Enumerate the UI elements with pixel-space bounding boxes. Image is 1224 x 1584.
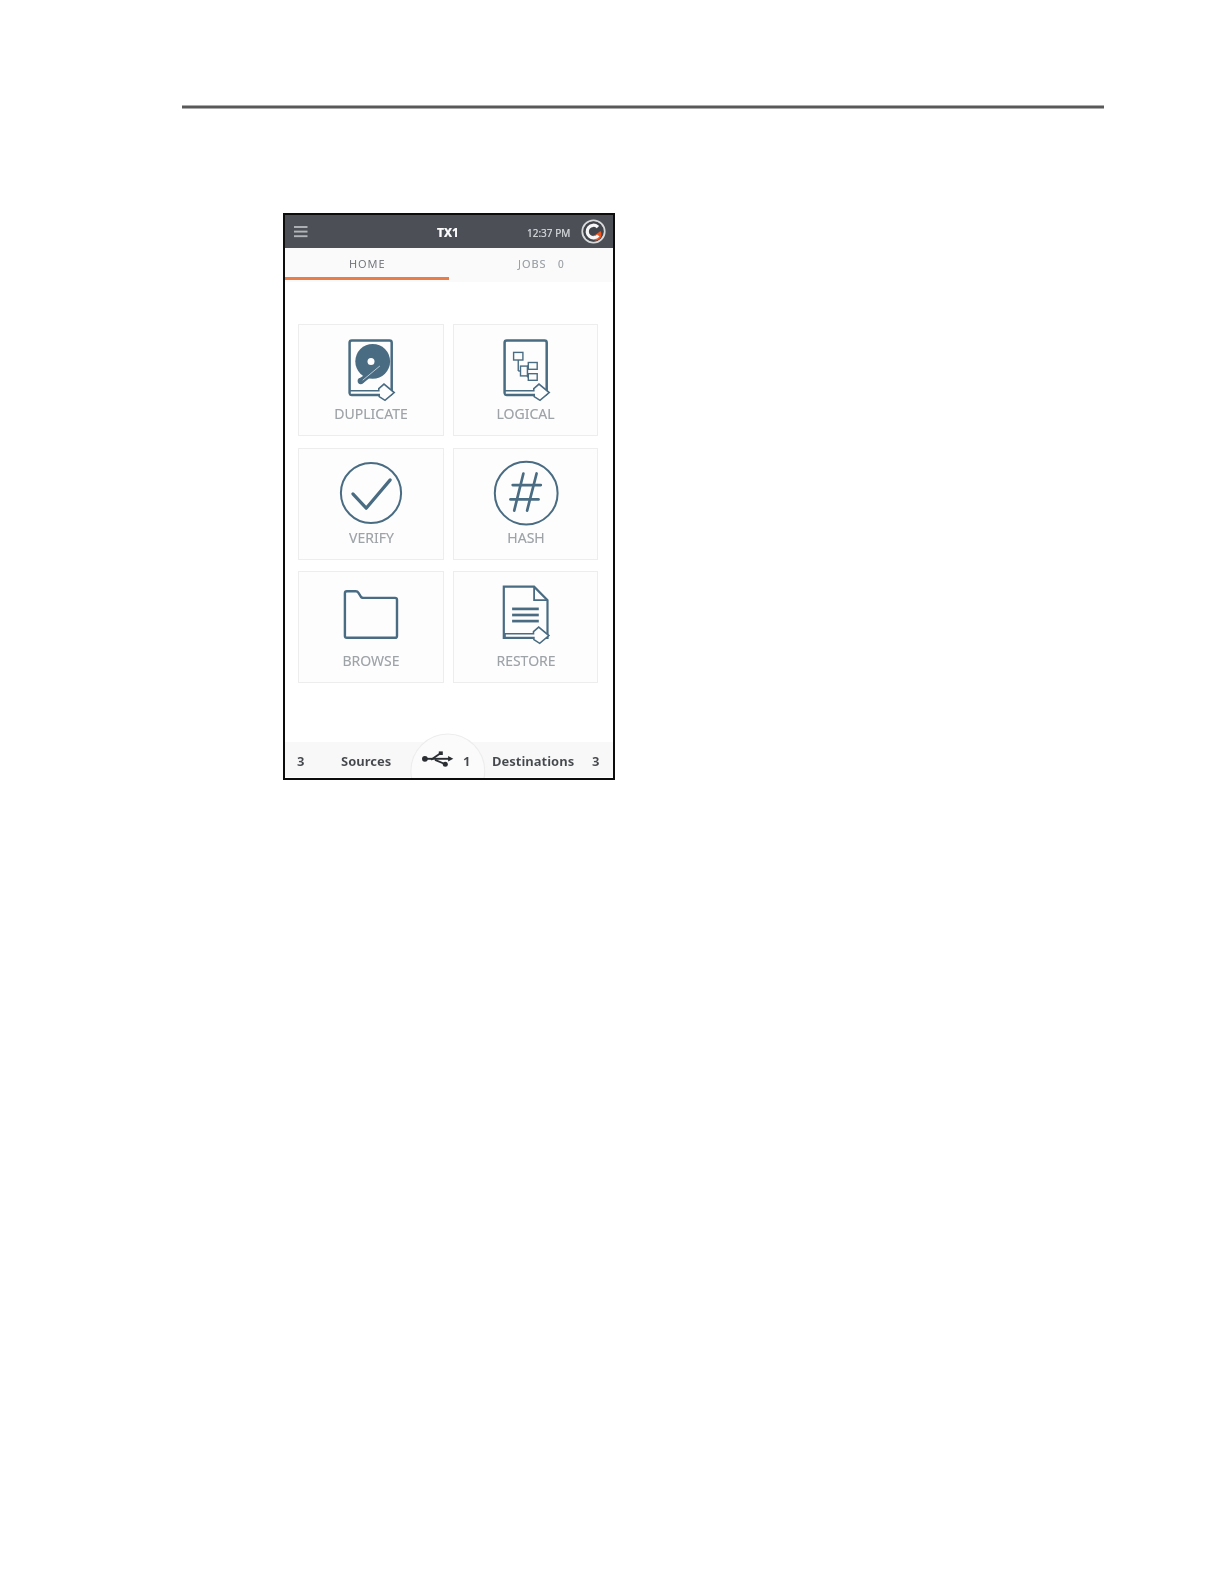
button[interactable]: HASH	[453, 448, 598, 560]
staticText: TX1	[437, 224, 459, 240]
staticText: 0	[558, 257, 564, 271]
staticText: 3	[297, 752, 305, 770]
button[interactable]: HOME	[285, 248, 449, 282]
button[interactable]: RESTORE	[453, 571, 598, 683]
staticText: Sources	[341, 752, 392, 770]
staticText: RESTORE	[496, 651, 556, 670]
staticText: VERIFY	[349, 528, 394, 547]
staticText: 1	[463, 752, 471, 770]
button[interactable]: DUPLICATE	[298, 324, 444, 436]
staticText: 3	[592, 752, 600, 770]
staticText: 12:37 PM	[527, 226, 571, 240]
staticText: DUPLICATE	[334, 404, 408, 423]
button[interactable]: Logo	[581, 219, 606, 244]
button[interactable]: JOBS	[449, 248, 613, 282]
button[interactable]: Sources	[341, 752, 392, 770]
button[interactable]: BROWSE	[298, 571, 444, 683]
button[interactable]: Destinations	[492, 752, 575, 770]
button[interactable]: USB connections	[422, 751, 454, 768]
staticText: LOGICAL	[496, 404, 555, 423]
staticText: JOBS	[518, 256, 547, 271]
staticText: BROWSE	[342, 651, 400, 670]
staticText: Destinations	[492, 752, 575, 770]
staticText: HOME	[349, 256, 386, 271]
button[interactable]: LOGICAL	[453, 324, 598, 436]
button[interactable]: VERIFY	[298, 448, 444, 560]
staticText: HASH	[507, 528, 545, 547]
button[interactable]: Open navigation menu	[290, 223, 312, 240]
